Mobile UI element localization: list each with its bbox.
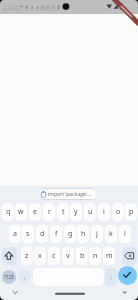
button[interactable]: p bbox=[125, 203, 137, 221]
button[interactable]: c bbox=[48, 247, 60, 265]
button[interactable]: v bbox=[62, 247, 74, 265]
staticText: z bbox=[25, 251, 29, 261]
button[interactable]: z bbox=[21, 247, 33, 265]
staticText: n bbox=[93, 251, 98, 261]
button[interactable]: y bbox=[70, 203, 82, 221]
button[interactable]: , bbox=[18, 270, 31, 283]
staticText: t bbox=[62, 207, 65, 217]
staticText: g bbox=[68, 229, 73, 239]
staticText: e bbox=[33, 207, 37, 217]
button[interactable]: q bbox=[2, 203, 14, 221]
button[interactable]: i bbox=[98, 203, 110, 221]
button[interactable] bbox=[2, 247, 17, 265]
button[interactable]: g bbox=[64, 225, 76, 243]
button[interactable]: n bbox=[89, 247, 101, 265]
staticText: . bbox=[110, 272, 112, 282]
button[interactable]: ?123 bbox=[2, 270, 16, 284]
button[interactable]: b bbox=[76, 247, 88, 265]
button[interactable]: . bbox=[105, 268, 117, 286]
staticText: , bbox=[24, 273, 26, 281]
button[interactable]: a bbox=[9, 225, 21, 243]
button[interactable]: m bbox=[103, 247, 115, 265]
staticText: y bbox=[74, 207, 78, 217]
staticText: m bbox=[106, 251, 113, 261]
button[interactable]: import 'package:... bbox=[38, 188, 98, 200]
staticText: j bbox=[96, 229, 98, 239]
button[interactable]: l bbox=[119, 225, 131, 243]
staticText: d bbox=[40, 229, 45, 239]
staticText: b bbox=[80, 251, 85, 261]
button[interactable]: u bbox=[84, 203, 96, 221]
button[interactable]: r bbox=[43, 203, 55, 221]
staticText: p bbox=[129, 207, 134, 217]
staticText: o bbox=[116, 207, 121, 217]
button[interactable]: e bbox=[29, 203, 41, 221]
button[interactable]: o bbox=[112, 203, 124, 221]
staticText: k bbox=[109, 229, 113, 239]
staticText: a bbox=[13, 229, 17, 239]
staticText: c bbox=[52, 251, 56, 261]
staticText: q bbox=[6, 207, 11, 217]
button[interactable] bbox=[118, 266, 137, 285]
staticText: h bbox=[81, 229, 86, 239]
staticText: f bbox=[55, 229, 58, 239]
staticText: ここにテキストが入ります bbox=[3, 4, 67, 10]
staticText: l bbox=[124, 229, 126, 239]
button[interactable]: d bbox=[36, 225, 48, 243]
staticText: w bbox=[18, 207, 24, 217]
button[interactable] bbox=[122, 247, 137, 265]
staticText: ?123 bbox=[4, 274, 14, 280]
button[interactable]: s bbox=[22, 225, 34, 243]
staticText: x bbox=[38, 251, 42, 261]
button[interactable]: h bbox=[77, 225, 89, 243]
staticText: u bbox=[88, 207, 93, 217]
staticText: s bbox=[26, 229, 30, 239]
button[interactable]: x bbox=[34, 247, 46, 265]
button[interactable]: j bbox=[91, 225, 103, 243]
staticText: i bbox=[103, 207, 105, 217]
staticText: v bbox=[66, 251, 70, 261]
staticText: import 'package:... bbox=[48, 191, 92, 198]
staticText: r bbox=[48, 207, 51, 217]
button[interactable]: w bbox=[15, 203, 27, 221]
button[interactable]: f bbox=[50, 225, 62, 243]
button[interactable]: t bbox=[57, 203, 69, 221]
button[interactable]: k bbox=[105, 225, 117, 243]
